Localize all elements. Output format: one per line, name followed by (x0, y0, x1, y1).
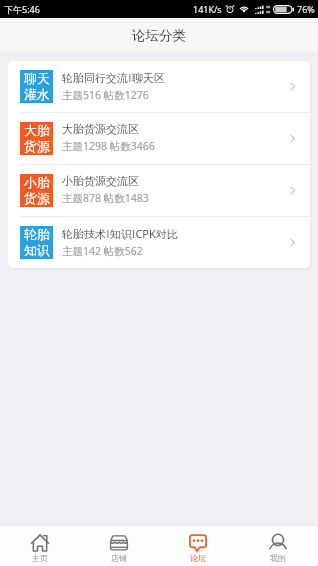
staticText: 轮胎同行交流ǀ聊天区 (62, 70, 165, 85)
button[interactable]: 论坛 (158, 526, 238, 566)
button[interactable]: 大胎 (8, 113, 310, 164)
staticText: 下午5:46 (4, 3, 40, 15)
staticText: 货源 (24, 139, 50, 155)
button[interactable]: 我的 (238, 526, 318, 566)
staticText: 主题1298 帖数3466 (62, 139, 155, 153)
staticText: 轮胎 (24, 227, 50, 243)
staticText: 知识 (24, 243, 50, 259)
button[interactable]: 店铺 (79, 526, 158, 566)
button[interactable]: 小胎 (8, 165, 310, 216)
staticText: 主题142 帖数562 (62, 244, 143, 258)
staticText: 聊天 (24, 71, 50, 87)
staticText: 大胎 (24, 123, 50, 139)
staticText: 小胎货源交流区 (62, 174, 139, 188)
staticText: 我的 (270, 553, 286, 563)
staticText: 店铺 (111, 553, 127, 563)
staticText: 主题878 帖数1483 (62, 191, 149, 205)
staticText: 灌水 (24, 87, 50, 103)
staticText: 主题516 帖数1276 (62, 88, 149, 102)
staticText: 主页 (32, 553, 48, 563)
staticText: 141K/s (193, 3, 222, 15)
staticText: 论坛分类 (132, 27, 186, 44)
staticText: 大胎货源交流区 (62, 122, 139, 136)
other: 店铺 (110, 534, 128, 552)
other: 主页 (31, 534, 49, 552)
other: 论坛 (189, 534, 207, 552)
staticText: 论坛 (190, 553, 206, 563)
button[interactable]: 聊天 (8, 61, 310, 112)
staticText: 轮胎技术ǀ知识ǀCPK对比 (62, 226, 178, 241)
staticText: 小胎 (24, 175, 50, 191)
button[interactable]: 轮胎 (8, 217, 310, 268)
other: 我的 (269, 534, 287, 552)
staticText: 76% (297, 3, 315, 15)
button[interactable]: 主页 (0, 526, 79, 566)
staticText: 货源 (24, 191, 50, 207)
